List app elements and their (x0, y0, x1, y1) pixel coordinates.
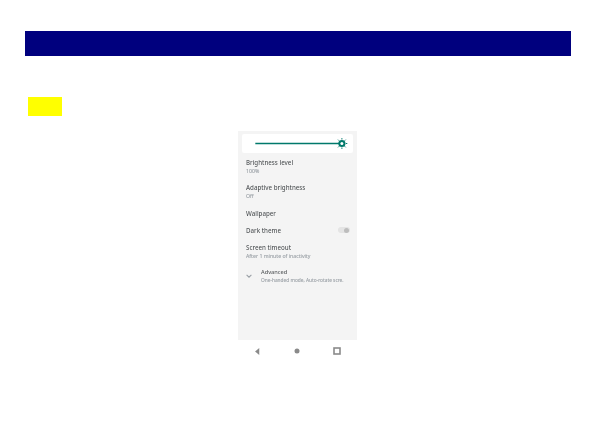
button[interactable]: Recent apps (317, 348, 357, 354)
button[interactable]: Back (238, 348, 277, 355)
button[interactable]: Home (277, 348, 317, 354)
button[interactable]: Brightness level (238, 158, 357, 174)
button[interactable]: Advanced (238, 268, 357, 284)
staticText: 100% (246, 167, 260, 174)
button[interactable]: Wallpaper (238, 209, 357, 217)
button[interactable]: Dark theme toggle (338, 227, 350, 233)
staticText: Dark theme (246, 226, 338, 234)
button[interactable]: Adaptive brightness (238, 183, 357, 199)
staticText: Advanced (261, 268, 288, 276)
staticText: Screen timeout (246, 243, 292, 251)
button[interactable]: Dark theme (238, 226, 357, 234)
staticText: Brightness level (246, 158, 294, 166)
staticText: One-handed mode, Auto-rotate scre. (261, 277, 344, 284)
staticText: After 1 minute of inactivity (246, 252, 311, 259)
staticText: Wallpaper (246, 209, 276, 217)
button[interactable]: Brightness slider (242, 134, 353, 153)
staticText: Off (246, 192, 254, 199)
button[interactable]: Screen timeout (238, 243, 357, 259)
staticText: Adaptive brightness (246, 183, 306, 191)
